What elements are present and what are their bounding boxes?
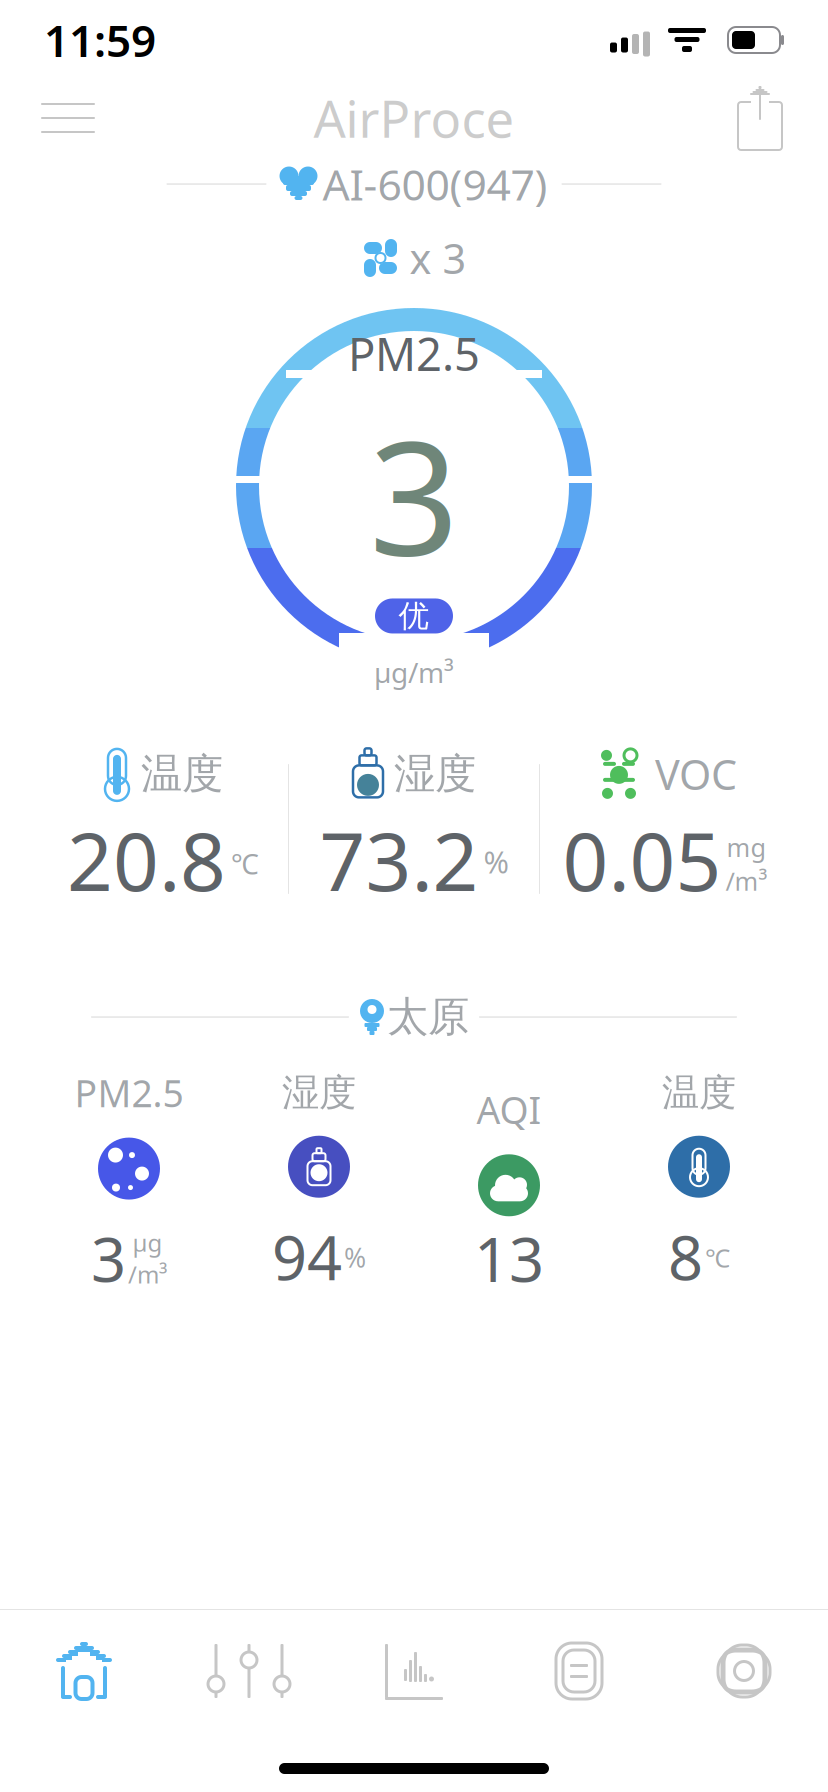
staticText: AQI (476, 1085, 541, 1134)
staticText: % (344, 1240, 366, 1275)
staticText: 73.2 (319, 807, 478, 913)
button[interactable]: AI-600(947) (166, 156, 661, 212)
staticText: PM2.5 (348, 323, 480, 383)
staticText: 20.8 (67, 807, 226, 913)
staticText: VOC (655, 746, 737, 801)
staticText: AI-600(947) (322, 156, 547, 212)
button[interactable]: Share (710, 82, 810, 154)
staticText: 94 (272, 1216, 342, 1297)
staticText: 湿度 (394, 748, 476, 799)
button[interactable]: Home (1, 1610, 166, 1732)
staticText: 湿度 (282, 1070, 356, 1116)
staticText: 温度 (141, 748, 223, 799)
button[interactable]: PM2.5 (34, 1068, 224, 1299)
staticText: ℃ (231, 845, 259, 882)
button[interactable]: Controls (166, 1610, 331, 1732)
staticText: 太原 (387, 992, 469, 1042)
staticText: 温度 (662, 1070, 736, 1116)
staticText: 11:59 (44, 11, 156, 69)
staticText: 3 (91, 1218, 126, 1299)
staticText: µg/m³ (374, 653, 454, 691)
button[interactable]: AQI (414, 1085, 604, 1282)
button[interactable]: Settings (661, 1610, 826, 1732)
staticText: /m³ (128, 1258, 167, 1290)
staticText: 8 (668, 1216, 703, 1297)
button[interactable]: Filter (496, 1610, 661, 1732)
button[interactable]: Statistics (331, 1610, 496, 1732)
staticText: 3 (369, 389, 459, 598)
button[interactable]: 湿度 (224, 1070, 414, 1297)
button[interactable]: 太原 (91, 990, 737, 1044)
button[interactable]: 温度 (604, 1070, 794, 1297)
staticText: AirProce (313, 84, 514, 152)
staticText: /m³ (725, 864, 767, 898)
staticText: ℃ (705, 1241, 730, 1274)
staticText: 0.05 (562, 807, 721, 913)
staticText: 优 (398, 597, 429, 635)
button[interactable]: Menu (18, 82, 118, 154)
staticText: PM2.5 (74, 1068, 183, 1118)
button[interactable]: x 3 (361, 236, 466, 280)
staticText: x 3 (409, 231, 466, 285)
staticText: mg (726, 830, 766, 864)
staticText: % (483, 841, 508, 882)
staticText: 13 (474, 1218, 544, 1299)
staticText: µg (132, 1226, 162, 1258)
